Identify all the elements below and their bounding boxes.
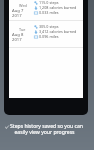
- staticText: easily view your progress: [14, 129, 75, 136]
- staticText: Aug 8 2017: [12, 32, 33, 42]
- staticText: 115.0 steps: [39, 0, 59, 5]
- staticText: 3,412 calories burned: [39, 29, 77, 34]
- staticText: Aug 7 2017: [12, 8, 33, 18]
- staticText: 305.0 steps: [39, 24, 59, 29]
- staticText: 0.096 miles: [39, 34, 59, 39]
- button[interactable]: Wed: [9, 0, 83, 20]
- button[interactable]: Tue: [9, 21, 83, 48]
- staticText: Steps history saved so you can: [10, 123, 83, 130]
- staticText: Tue: [19, 27, 26, 32]
- staticText: Wed: [19, 3, 27, 8]
- staticText: 0.033 miles: [39, 10, 59, 15]
- staticText: 1,208 calories burned: [39, 5, 77, 10]
